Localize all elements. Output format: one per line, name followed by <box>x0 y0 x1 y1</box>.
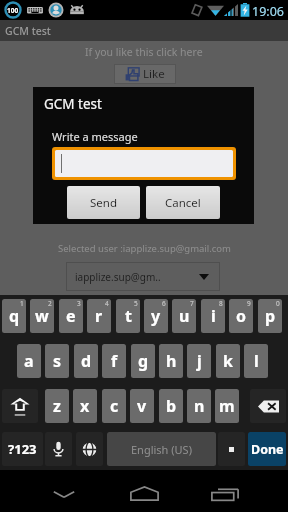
staticText: English (US) <box>131 442 192 457</box>
staticText: Cancel <box>165 195 201 211</box>
button[interactable]: o <box>229 299 253 333</box>
button[interactable]: r <box>87 299 111 333</box>
staticText: k <box>223 350 233 372</box>
staticText: d <box>81 350 92 372</box>
staticText: z <box>53 395 61 417</box>
button[interactable] <box>55 150 233 177</box>
button[interactable]: d <box>74 344 98 378</box>
staticText: 9 <box>247 299 251 308</box>
button[interactable]: z <box>45 389 69 423</box>
button[interactable]: c <box>102 389 126 423</box>
button[interactable]: Like <box>114 64 176 84</box>
button[interactable]: Cancel <box>146 186 220 219</box>
staticText: Like <box>143 66 165 82</box>
staticText: 0 <box>276 299 280 308</box>
button[interactable]: h <box>159 344 183 378</box>
staticText: g <box>138 350 149 372</box>
button[interactable]: English (US) <box>107 432 216 466</box>
staticText: f <box>111 350 118 372</box>
staticText: c <box>110 395 119 417</box>
button[interactable]: u <box>172 299 196 333</box>
button[interactable]: x <box>73 389 97 423</box>
button[interactable]: Home <box>96 470 192 512</box>
staticText: 6 <box>162 299 166 308</box>
button[interactable]: a <box>17 344 41 378</box>
staticText: Send <box>90 195 117 211</box>
staticText: q <box>9 305 20 327</box>
button[interactable]: Shift <box>2 389 38 423</box>
button[interactable]: v <box>130 389 154 423</box>
staticText: Write a message <box>52 129 138 144</box>
button[interactable]: s <box>45 344 69 378</box>
button[interactable]: Hide keyboard <box>16 470 112 512</box>
staticText: n <box>194 395 205 417</box>
button[interactable]: Recent apps <box>177 470 273 512</box>
staticText: w <box>35 305 49 327</box>
staticText: 5 <box>134 299 138 308</box>
button[interactable]: iapplize.sup@gm.. <box>66 262 220 291</box>
staticText: j <box>197 350 202 372</box>
staticText: r <box>95 305 103 327</box>
button[interactable]: ?123 <box>2 432 43 466</box>
button[interactable]: j <box>187 344 211 378</box>
button[interactable]: n <box>187 389 211 423</box>
staticText: GCM test <box>44 95 102 113</box>
button[interactable]: i <box>201 299 225 333</box>
staticText: 2 <box>48 299 52 308</box>
staticText: l <box>254 350 259 372</box>
button[interactable]: m <box>215 389 239 423</box>
button[interactable]: g <box>131 344 155 378</box>
staticText: m <box>219 395 235 417</box>
button[interactable]: t <box>116 299 140 333</box>
staticText: 1 <box>20 299 24 308</box>
staticText: y <box>151 305 161 327</box>
staticText: t <box>125 305 132 327</box>
staticText: If you like this click here <box>85 45 203 59</box>
staticText: e <box>66 305 76 327</box>
button[interactable]: l <box>244 344 268 378</box>
staticText: p <box>265 305 276 327</box>
staticText: Selected user :iapplize.sup@gmail.com <box>58 242 231 255</box>
button[interactable]: e <box>59 299 83 333</box>
button[interactable]: y <box>144 299 168 333</box>
staticText: 19:06 <box>252 3 284 20</box>
staticText: h <box>166 350 177 372</box>
button[interactable]: Send <box>67 186 140 219</box>
staticText: 7 <box>190 299 194 308</box>
staticText: 100 <box>7 6 19 15</box>
staticText: 4 <box>105 299 109 308</box>
button[interactable]: p <box>258 299 282 333</box>
button[interactable]: k <box>216 344 240 378</box>
button[interactable]: q <box>2 299 26 333</box>
staticText: 3 <box>77 299 81 308</box>
staticText: b <box>166 395 177 417</box>
staticText: v <box>137 395 147 417</box>
staticText: x <box>80 395 90 417</box>
button[interactable]: Backspace <box>250 389 286 423</box>
button[interactable]: Voice input <box>45 432 72 466</box>
staticText: a <box>24 350 34 372</box>
staticText: 8 <box>219 299 223 308</box>
button[interactable]: b <box>159 389 183 423</box>
staticText: s <box>53 350 62 372</box>
staticText: Done <box>251 441 284 458</box>
staticText: i <box>211 305 216 327</box>
button[interactable]: Done <box>248 432 286 466</box>
staticText: ?123 <box>8 440 37 458</box>
button[interactable]: f <box>102 344 126 378</box>
button[interactable]: w <box>30 299 54 333</box>
button[interactable]: Change language <box>76 432 103 466</box>
staticText: GCM test <box>5 24 51 38</box>
staticText: iapplize.sup@gm.. <box>75 270 161 284</box>
staticText: o <box>236 305 247 327</box>
button[interactable]: Period <box>218 432 245 466</box>
staticText: u <box>179 305 190 327</box>
